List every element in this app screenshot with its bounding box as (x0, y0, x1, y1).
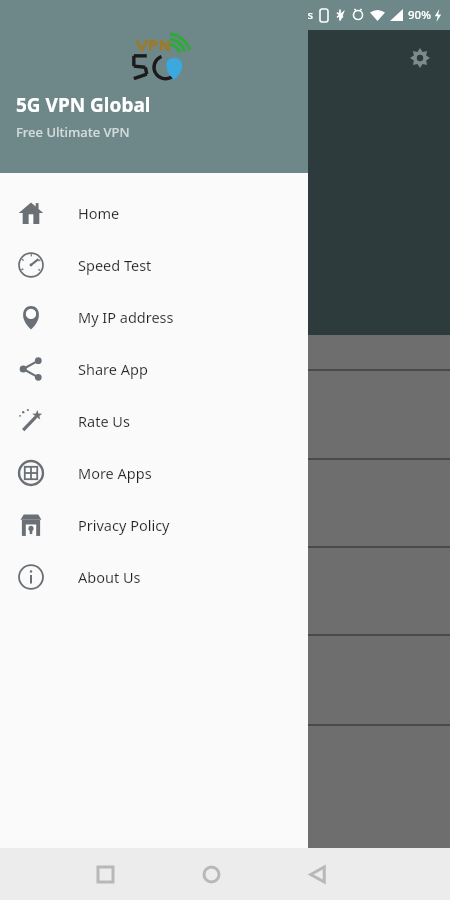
staticText: 0.00 K/s (270, 7, 314, 23)
staticText: Speed Test (78, 255, 152, 275)
button[interactable]: Speed Test (0, 239, 308, 291)
staticText: Privacy Policy (78, 515, 170, 535)
staticText: 90% (408, 7, 431, 23)
button[interactable]: Settings (402, 40, 438, 76)
staticText: Home (78, 203, 120, 223)
button[interactable]: Share App (0, 343, 308, 395)
button[interactable]: Home (0, 187, 308, 239)
button[interactable]: Back (295, 852, 339, 896)
staticText: Free Ultimate VPN (16, 123, 130, 141)
button[interactable]: Privacy Policy (0, 499, 308, 551)
staticText: Share App (78, 359, 148, 379)
staticText: More Apps (78, 463, 152, 483)
staticText: My IP address (78, 307, 174, 327)
button[interactable]: More Apps (0, 447, 308, 499)
button[interactable]: Rate Us (0, 395, 308, 447)
button[interactable]: My IP address (0, 291, 308, 343)
button[interactable]: Home (189, 852, 233, 896)
button[interactable]: About Us (0, 551, 308, 603)
button[interactable]: Recents (83, 852, 127, 896)
staticText: Rate Us (78, 411, 130, 431)
staticText: 5G VPN Global (16, 92, 151, 118)
staticText: About Us (78, 567, 141, 587)
